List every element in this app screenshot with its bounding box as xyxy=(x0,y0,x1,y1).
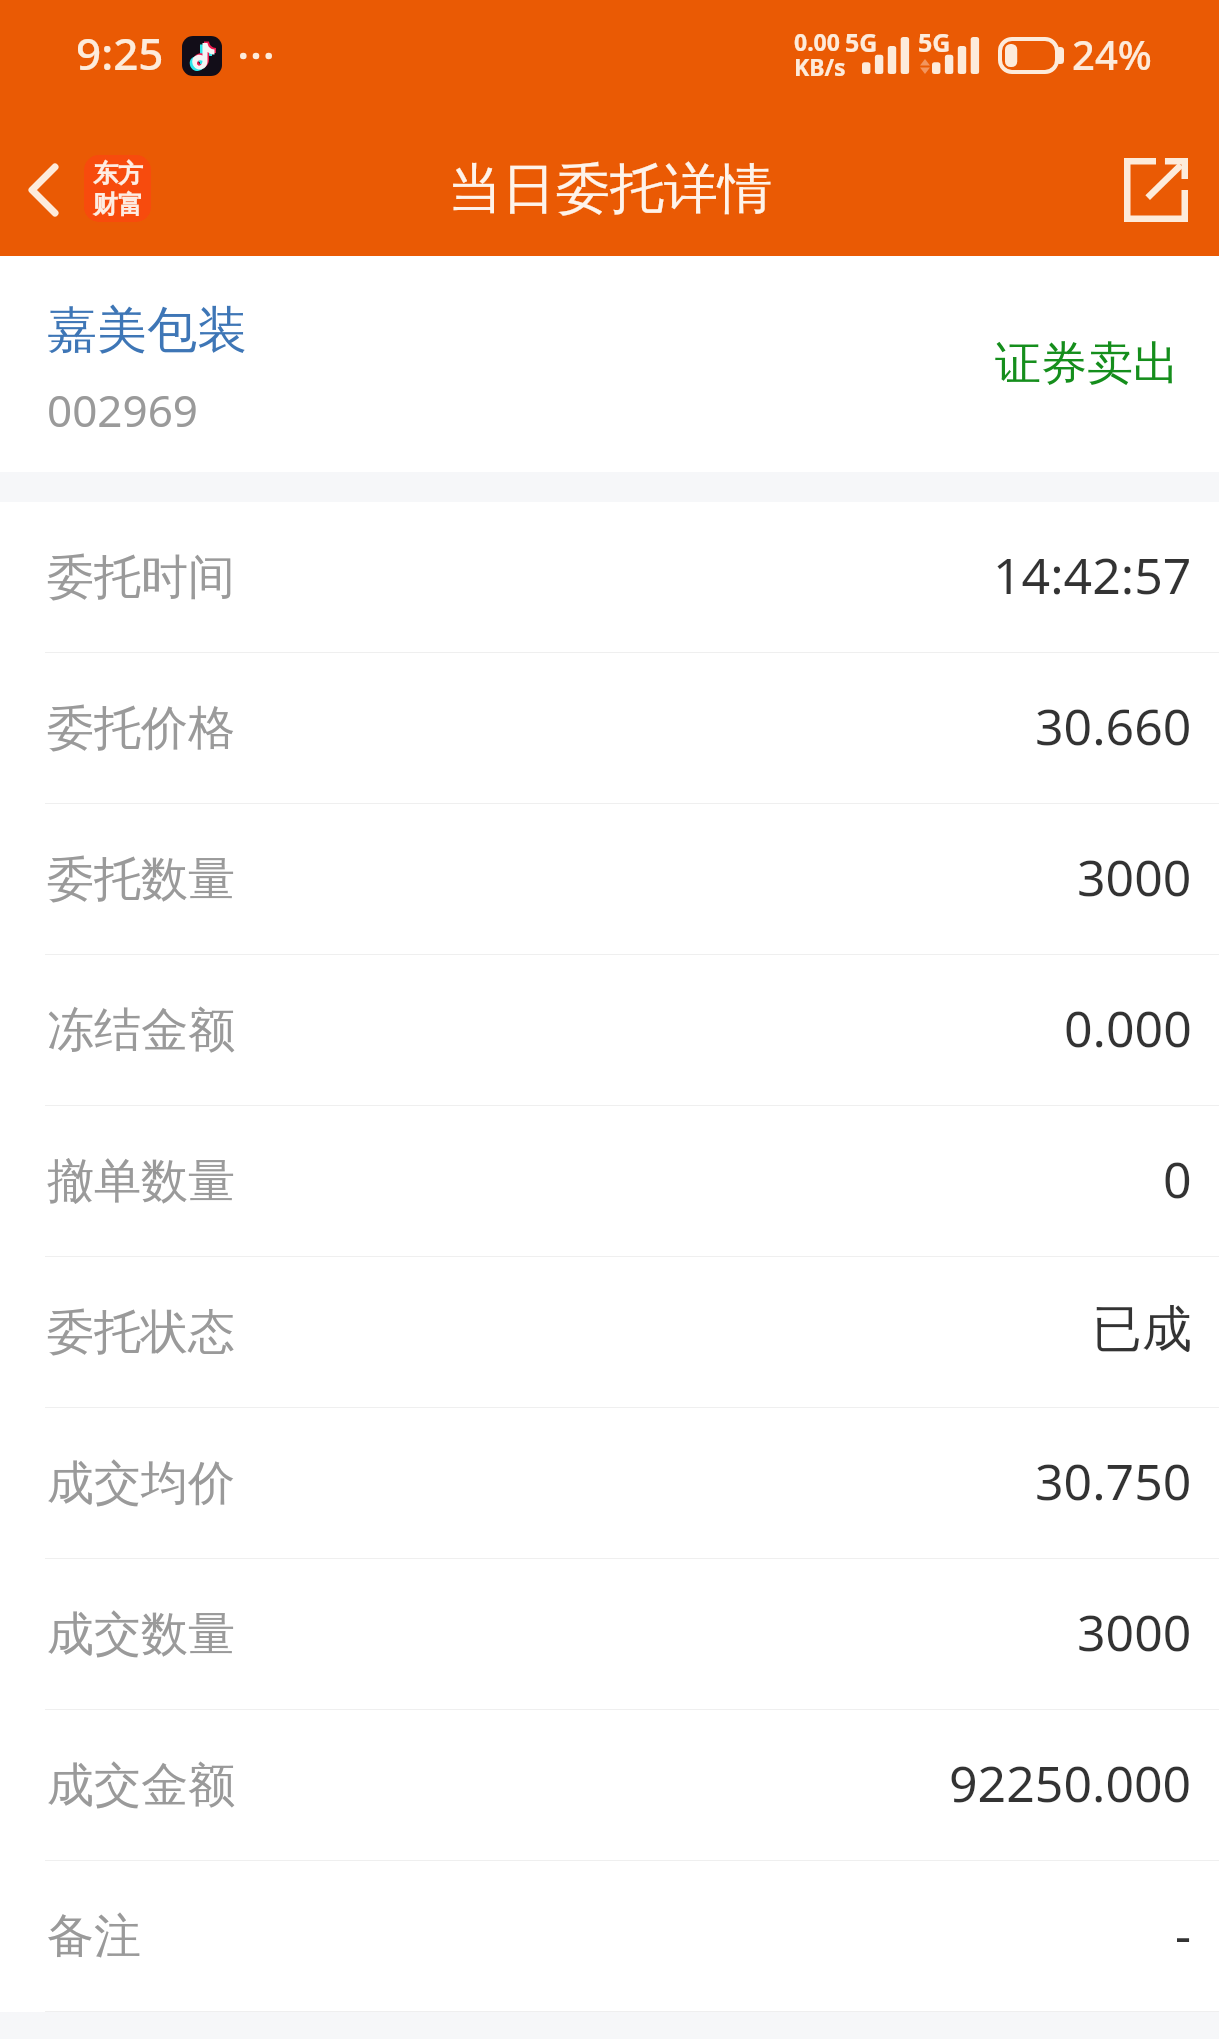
staticText: 30.660 xyxy=(1035,692,1192,760)
staticText: 9:25 xyxy=(76,23,164,83)
button[interactable]: 成交数量 xyxy=(0,1559,1219,1710)
staticText: 0.00 xyxy=(794,26,840,57)
staticText: 委托时间 xyxy=(47,548,235,607)
staticText: 财富 xyxy=(93,189,143,220)
staticText: 证券卖出 xyxy=(995,335,1179,393)
staticText: 92250.000 xyxy=(949,1749,1192,1817)
button[interactable]: 委托价格 xyxy=(0,653,1219,804)
staticText: 委托数量 xyxy=(47,850,235,909)
button[interactable]: 备注 xyxy=(0,1861,1219,2012)
button[interactable]: 委托数量 xyxy=(0,804,1219,955)
staticText: 0 xyxy=(1163,1145,1192,1213)
staticText: 002969 xyxy=(47,380,199,440)
staticText: 当日委托详情 xyxy=(448,155,772,223)
staticText: 成交均价 xyxy=(47,1454,235,1513)
staticText: 已成 xyxy=(1092,1298,1192,1361)
staticText: 撤单数量 xyxy=(47,1152,235,1211)
staticText: 成交金额 xyxy=(47,1756,235,1815)
button[interactable]: Back xyxy=(3,150,83,230)
staticText: KB/s xyxy=(794,51,846,82)
staticText: 24% xyxy=(1072,27,1152,81)
staticText: 3000 xyxy=(1077,843,1192,911)
staticText: 0.000 xyxy=(1064,994,1192,1062)
button[interactable]: 冻结金额 xyxy=(0,955,1219,1106)
staticText: 东方 xyxy=(93,158,143,189)
staticText: - xyxy=(1175,1900,1192,1968)
staticText: 成交数量 xyxy=(47,1605,235,1664)
staticText: 14:42:57 xyxy=(993,541,1192,609)
button[interactable]: 撤单数量 xyxy=(0,1106,1219,1257)
staticText: 嘉美包装 xyxy=(47,299,247,362)
staticText: 冻结金额 xyxy=(47,1001,235,1060)
staticText: 5G xyxy=(845,25,878,59)
button[interactable]: 成交金额 xyxy=(0,1710,1219,1861)
button[interactable]: 委托时间 xyxy=(0,502,1219,653)
staticText: 委托价格 xyxy=(47,699,235,758)
button[interactable]: Share xyxy=(1111,145,1201,235)
staticText: 备注 xyxy=(47,1907,141,1966)
staticText: 30.750 xyxy=(1035,1447,1192,1515)
staticText: 5G xyxy=(918,25,951,59)
staticText: 3000 xyxy=(1077,1598,1192,1666)
button[interactable]: 成交均价 xyxy=(0,1408,1219,1559)
button[interactable]: 委托状态 xyxy=(0,1257,1219,1408)
other: East Money logo xyxy=(84,155,151,222)
staticText: 委托状态 xyxy=(47,1303,235,1362)
